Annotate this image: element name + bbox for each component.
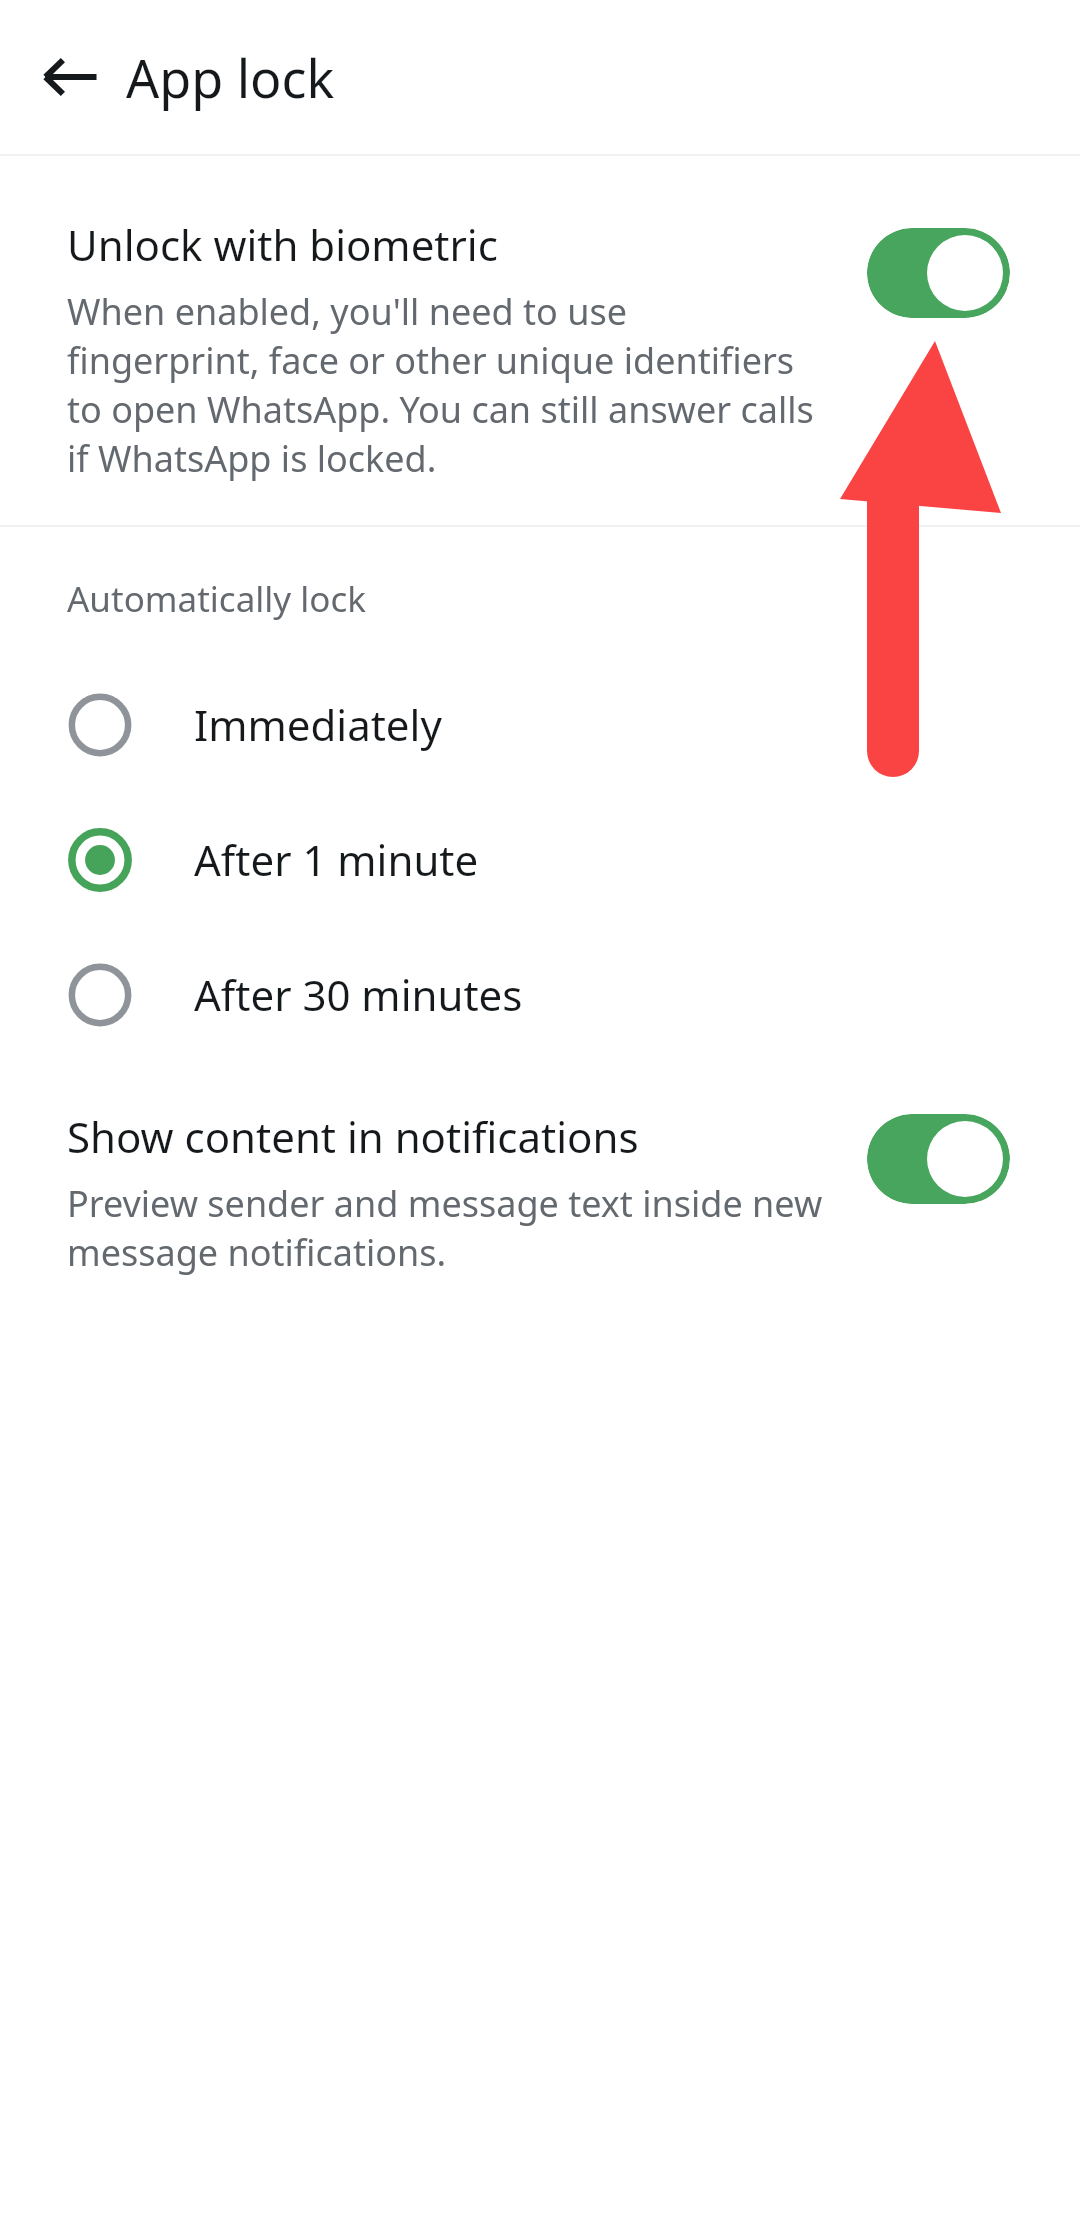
staticText: After 1 minute [194,831,479,888]
staticText: After 30 minutes [194,966,523,1023]
button[interactable]: Toggle setting [867,228,1010,318]
button[interactable]: After 30 minutes [0,927,1080,1062]
staticText: Immediately [194,696,442,753]
staticText: Preview sender and message text inside n… [67,1179,830,1277]
button[interactable]: After 1 minute [0,792,1080,927]
button[interactable]: Unlock with biometric [0,156,1080,525]
button[interactable]: Toggle setting [867,1114,1010,1204]
button[interactable]: Show content in notifications [0,1080,1080,1319]
button[interactable]: Back [24,30,118,124]
button[interactable]: Immediately [0,657,1080,792]
staticText: App lock [126,42,335,113]
staticText: Show content in notifications [67,1108,639,1165]
staticText: Unlock with biometric [67,216,498,273]
staticText: When enabled, you'll need to use fingerp… [67,287,820,483]
staticText: Automatically lock [67,575,366,623]
